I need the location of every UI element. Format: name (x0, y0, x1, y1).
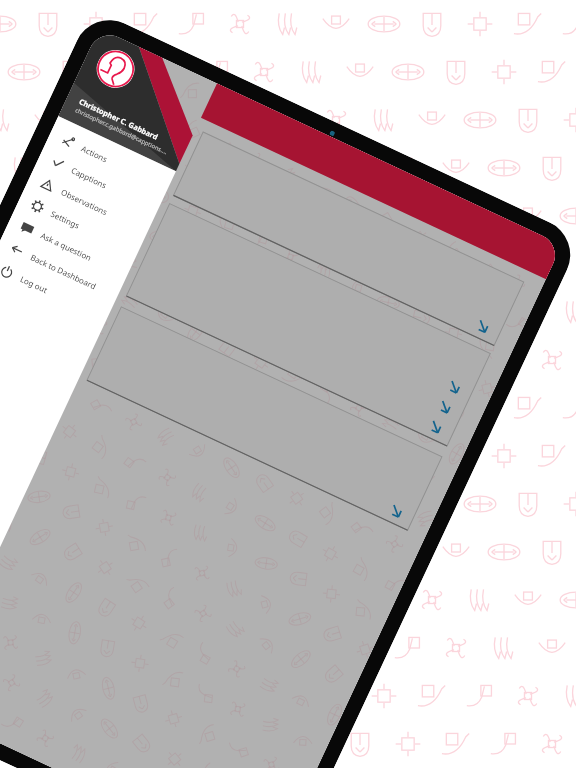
button[interactable]: Open item (430, 421, 442, 433)
button[interactable]: Open item (390, 505, 402, 517)
button[interactable]: Actions (45, 121, 173, 198)
button[interactable]: Capptions (35, 143, 163, 220)
staticText: Observations (59, 186, 109, 217)
button[interactable]: Open item (448, 381, 460, 393)
button[interactable]: Open item (173, 132, 524, 345)
button[interactable]: Ask a question (5, 208, 133, 285)
button[interactable]: Settings (15, 187, 143, 263)
button[interactable]: Open item (477, 320, 489, 332)
staticText: Ask a question (39, 230, 93, 263)
button[interactable]: Open item (439, 401, 451, 413)
staticText: Log out (19, 273, 50, 295)
button[interactable]: Back to Dashboard (0, 230, 122, 307)
staticText: Christopher C. Gabbard (78, 96, 160, 142)
staticText: Back to Dashboard (29, 251, 99, 292)
button[interactable]: Observations (25, 165, 153, 242)
staticText: christopher.c.gabbard@capptions.... (74, 106, 169, 156)
staticText: Capptions (70, 164, 109, 190)
staticText: Settings (49, 208, 82, 231)
button[interactable]: Open item (126, 204, 490, 446)
button[interactable]: Profile (90, 44, 141, 94)
button[interactable]: Log out (0, 252, 112, 329)
staticText: Actions (80, 143, 110, 164)
button[interactable]: Open item (87, 307, 442, 530)
